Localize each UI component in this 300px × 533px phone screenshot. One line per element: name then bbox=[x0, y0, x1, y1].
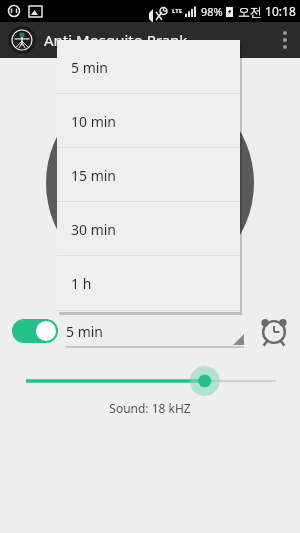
staticText: 1 h bbox=[71, 274, 92, 293]
button[interactable]: Set alarm bbox=[254, 311, 294, 351]
staticText: 5 min bbox=[66, 322, 104, 341]
staticText: 98% bbox=[201, 4, 223, 19]
button[interactable]: 1 h bbox=[57, 256, 240, 310]
button[interactable]: More options bbox=[270, 22, 300, 58]
button[interactable]: 30 min bbox=[57, 202, 240, 256]
staticText: Anti Mosquito Prank bbox=[44, 30, 188, 50]
staticText: 5 min bbox=[71, 58, 109, 77]
button[interactable]: 5 min bbox=[66, 314, 244, 348]
staticText: 15 min bbox=[71, 166, 117, 185]
button[interactable]: 15 min bbox=[57, 148, 240, 202]
button[interactable]: Sound frequency bbox=[0, 368, 300, 394]
staticText: 10 min bbox=[71, 112, 117, 131]
staticText: Sound: 18 kHZ bbox=[0, 400, 300, 416]
button[interactable]: Timer enabled bbox=[12, 319, 58, 343]
staticText: 오전 10:18 bbox=[238, 3, 296, 19]
button[interactable]: 10 min bbox=[57, 94, 240, 148]
staticText: LTE bbox=[172, 7, 183, 15]
button[interactable]: Start repellent bbox=[46, 79, 254, 287]
button[interactable]: 5 min bbox=[57, 40, 240, 94]
staticText: 30 min bbox=[71, 220, 117, 239]
